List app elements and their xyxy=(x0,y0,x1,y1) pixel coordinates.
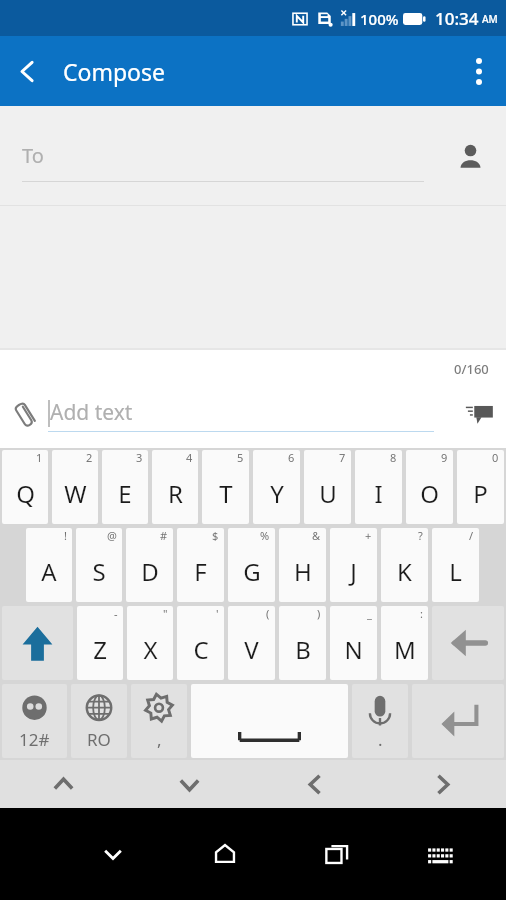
staticText: 4 xyxy=(186,450,193,465)
staticText: # xyxy=(160,528,168,543)
staticText: U xyxy=(319,477,337,510)
staticText: 2 xyxy=(86,450,93,465)
staticText: C xyxy=(193,633,209,666)
staticText: Z xyxy=(93,633,107,666)
staticText: 100% xyxy=(360,9,399,29)
staticText: H xyxy=(294,555,312,588)
button[interactable]: $ xyxy=(177,528,224,602)
button[interactable]: ? xyxy=(381,528,428,602)
staticText: & xyxy=(312,528,321,543)
button[interactable]: More options xyxy=(452,44,506,98)
staticText: . xyxy=(378,728,383,751)
staticText: : xyxy=(420,606,423,621)
staticText: X xyxy=(143,633,158,666)
staticText: L xyxy=(449,555,462,588)
button[interactable]: Backspace xyxy=(432,606,504,680)
button[interactable]: 3 xyxy=(102,450,148,524)
button[interactable]: Add text xyxy=(48,398,452,432)
button[interactable]: @ xyxy=(76,528,122,602)
button[interactable]: Language RO xyxy=(71,684,127,758)
staticText: 9 xyxy=(441,450,448,465)
staticText: R xyxy=(168,477,183,510)
button[interactable]: & xyxy=(279,528,326,602)
button[interactable]: Move left xyxy=(252,760,379,808)
staticText: , xyxy=(157,728,162,751)
button[interactable]: Voice input xyxy=(352,684,408,758)
staticText: 0 xyxy=(492,450,499,465)
staticText: N xyxy=(344,633,363,666)
staticText: M xyxy=(394,633,416,666)
staticText: + xyxy=(365,528,372,543)
staticText: _ xyxy=(367,606,372,621)
button[interactable]: Home xyxy=(169,808,281,900)
staticText: K xyxy=(397,555,412,588)
staticText: V xyxy=(244,633,259,666)
button[interactable]: Symbols xyxy=(2,684,67,758)
staticText: B xyxy=(295,633,311,666)
button[interactable]: 6 xyxy=(253,450,300,524)
staticText: F xyxy=(194,555,207,588)
staticText: RO xyxy=(87,728,111,751)
staticText: T xyxy=(219,477,233,510)
button[interactable]: Space xyxy=(191,684,348,758)
button[interactable]: Move up xyxy=(0,760,126,808)
staticText: D xyxy=(141,555,159,588)
button[interactable]: 1 xyxy=(2,450,48,524)
button[interactable]: Recent apps xyxy=(281,808,393,900)
button[interactable]: 2 xyxy=(52,450,98,524)
staticText: / xyxy=(469,528,474,543)
button[interactable]: Switch keyboard xyxy=(393,808,489,900)
button[interactable]: _ xyxy=(330,606,377,680)
button[interactable]: ! xyxy=(26,528,72,602)
button[interactable]: Move right xyxy=(379,760,506,808)
staticText: E xyxy=(118,477,132,510)
staticText: ! xyxy=(64,528,67,543)
staticText: Q xyxy=(16,477,35,510)
staticText: ' xyxy=(216,606,219,621)
staticText: ? xyxy=(418,528,423,543)
button[interactable]: Move down xyxy=(126,760,252,808)
button[interactable]: ' xyxy=(177,606,224,680)
staticText: 5 xyxy=(237,450,244,465)
button[interactable]: ) xyxy=(279,606,326,680)
button[interactable]: Pick contact xyxy=(446,132,494,180)
button[interactable]: Shift xyxy=(2,606,73,680)
staticText: 8 xyxy=(390,450,397,465)
staticText: % xyxy=(260,528,270,543)
button[interactable]: Attach file xyxy=(0,392,48,440)
staticText: Compose xyxy=(63,56,166,87)
staticText: @ xyxy=(107,528,117,543)
staticText: I xyxy=(374,477,383,510)
button[interactable]: % xyxy=(228,528,275,602)
button[interactable]: Settings xyxy=(131,684,187,758)
button[interactable]: 9 xyxy=(406,450,453,524)
button[interactable]: : xyxy=(381,606,428,680)
button[interactable]: " xyxy=(127,606,173,680)
button[interactable]: 4 xyxy=(152,450,198,524)
staticText: ) xyxy=(317,606,321,621)
staticText: " xyxy=(163,606,168,621)
button[interactable]: Hide keyboard xyxy=(57,808,169,900)
staticText: 3 xyxy=(136,450,143,465)
button[interactable]: + xyxy=(330,528,377,602)
button[interactable]: To xyxy=(22,130,446,182)
staticText: P xyxy=(473,477,488,510)
button[interactable]: 5 xyxy=(202,450,249,524)
button[interactable]: Send xyxy=(452,386,506,440)
button[interactable]: 8 xyxy=(355,450,402,524)
button[interactable]: 7 xyxy=(304,450,351,524)
button[interactable]: 0 xyxy=(457,450,504,524)
staticText: 0/160 xyxy=(454,360,489,378)
staticText: $ xyxy=(212,528,219,543)
button[interactable]: # xyxy=(126,528,173,602)
button[interactable]: Enter xyxy=(412,684,504,758)
button[interactable]: ( xyxy=(228,606,275,680)
button[interactable]: Back xyxy=(0,44,54,98)
button[interactable]: - xyxy=(77,606,123,680)
staticText: ( xyxy=(266,606,270,621)
staticText: 6 xyxy=(288,450,295,465)
staticText: J xyxy=(350,555,357,588)
button[interactable]: / xyxy=(432,528,479,602)
staticText: A xyxy=(41,555,57,588)
